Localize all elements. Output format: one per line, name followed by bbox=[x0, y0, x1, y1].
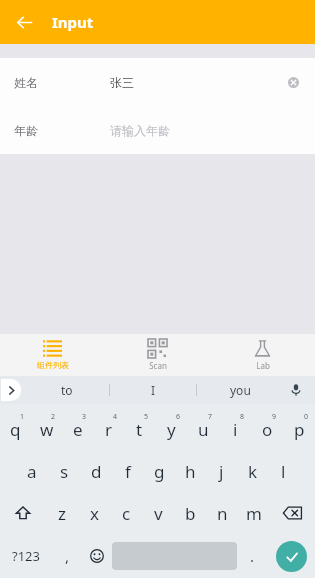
button[interactable]: w bbox=[31, 408, 62, 450]
staticText: y bbox=[167, 418, 176, 441]
staticText: e bbox=[73, 418, 83, 441]
staticText: 张三 bbox=[110, 75, 134, 90]
staticText: 8 bbox=[240, 412, 245, 422]
button[interactable]: Scan bbox=[105, 334, 210, 376]
button[interactable]: Backspace bbox=[270, 492, 315, 534]
button[interactable]: Voice input bbox=[285, 379, 307, 401]
staticText: , bbox=[65, 546, 70, 566]
staticText: 姓名 bbox=[14, 75, 38, 90]
button[interactable]: 年龄 bbox=[0, 106, 315, 154]
staticText: g bbox=[154, 460, 165, 483]
button[interactable]: n bbox=[206, 492, 238, 534]
staticText: to bbox=[61, 382, 73, 398]
staticText: z bbox=[58, 502, 66, 525]
button[interactable]: k bbox=[237, 450, 268, 492]
button[interactable]: Back bbox=[8, 6, 40, 38]
staticText: v bbox=[154, 502, 163, 525]
button[interactable]: i bbox=[219, 408, 251, 450]
staticText: w bbox=[40, 418, 54, 441]
button[interactable]: Expand suggestions bbox=[1, 379, 21, 401]
staticText: t bbox=[136, 418, 143, 441]
staticText: 组件列表 bbox=[37, 360, 69, 370]
staticText: 请输入年龄 bbox=[110, 123, 170, 138]
button[interactable]: j bbox=[206, 450, 237, 492]
button[interactable]: b bbox=[174, 492, 206, 534]
staticText: you bbox=[230, 382, 251, 398]
button[interactable]: a bbox=[16, 450, 48, 492]
staticText: 9 bbox=[272, 412, 277, 422]
staticText: k bbox=[248, 460, 258, 483]
button[interactable]: f bbox=[112, 450, 144, 492]
staticText: p bbox=[294, 418, 305, 441]
button[interactable]: g bbox=[144, 450, 175, 492]
button[interactable]: Enter bbox=[276, 541, 307, 572]
button[interactable]: y bbox=[155, 408, 187, 450]
staticText: h bbox=[185, 460, 196, 483]
staticText: 2 bbox=[51, 412, 56, 422]
staticText: a bbox=[27, 460, 37, 483]
button[interactable]: u bbox=[187, 408, 219, 450]
staticText: u bbox=[198, 418, 209, 441]
staticText: b bbox=[185, 502, 196, 525]
button[interactable]: z bbox=[46, 492, 78, 534]
staticText: l bbox=[281, 460, 286, 483]
button[interactable]: 姓名 bbox=[0, 58, 315, 106]
button[interactable]: e bbox=[62, 408, 93, 450]
staticText: q bbox=[10, 418, 21, 441]
staticText: m bbox=[246, 502, 262, 525]
staticText: Scan bbox=[149, 360, 167, 371]
button[interactable]: s bbox=[48, 450, 80, 492]
button[interactable]: x bbox=[78, 492, 110, 534]
button[interactable]: 组件列表 bbox=[0, 334, 105, 376]
staticText: 5 bbox=[144, 412, 149, 422]
staticText: d bbox=[91, 460, 102, 483]
button[interactable]: to bbox=[24, 376, 109, 404]
button[interactable]: , bbox=[52, 534, 82, 578]
staticText: 4 bbox=[113, 412, 118, 422]
staticText: 1 bbox=[20, 412, 25, 422]
staticText: 0 bbox=[304, 412, 309, 422]
staticText: s bbox=[60, 460, 69, 483]
button[interactable]: I bbox=[110, 376, 196, 404]
button[interactable]: Lab bbox=[210, 334, 315, 376]
button[interactable]: Clear bbox=[281, 70, 305, 94]
button[interactable]: ?123 bbox=[0, 534, 52, 578]
button[interactable]: r bbox=[93, 408, 124, 450]
button[interactable]: you bbox=[197, 376, 283, 404]
staticText: o bbox=[262, 418, 273, 441]
staticText: 7 bbox=[208, 412, 213, 422]
button[interactable]: d bbox=[80, 450, 112, 492]
staticText: r bbox=[105, 418, 113, 441]
staticText: i bbox=[233, 418, 238, 441]
staticText: I bbox=[151, 382, 156, 398]
button[interactable]: Shift bbox=[0, 492, 46, 534]
staticText: Lab bbox=[256, 360, 270, 371]
button[interactable]: h bbox=[175, 450, 206, 492]
button[interactable]: m bbox=[238, 492, 270, 534]
staticText: Input bbox=[52, 12, 94, 32]
button[interactable]: v bbox=[142, 492, 174, 534]
button[interactable]: t bbox=[124, 408, 155, 450]
button[interactable]: c bbox=[110, 492, 142, 534]
staticText: c bbox=[122, 502, 131, 525]
staticText: ?123 bbox=[12, 547, 40, 565]
staticText: f bbox=[125, 460, 131, 483]
button[interactable]: Emoji bbox=[82, 534, 112, 578]
staticText: 6 bbox=[176, 412, 181, 422]
staticText: j bbox=[219, 460, 224, 483]
button[interactable]: p bbox=[283, 408, 315, 450]
button[interactable]: o bbox=[251, 408, 283, 450]
staticText: . bbox=[250, 546, 255, 566]
staticText: 3 bbox=[82, 412, 87, 422]
staticText: x bbox=[90, 502, 99, 525]
button[interactable]: . bbox=[237, 534, 267, 578]
staticText: n bbox=[217, 502, 228, 525]
button[interactable]: q bbox=[0, 408, 31, 450]
button[interactable]: l bbox=[268, 450, 299, 492]
staticText: 年龄 bbox=[14, 123, 38, 138]
